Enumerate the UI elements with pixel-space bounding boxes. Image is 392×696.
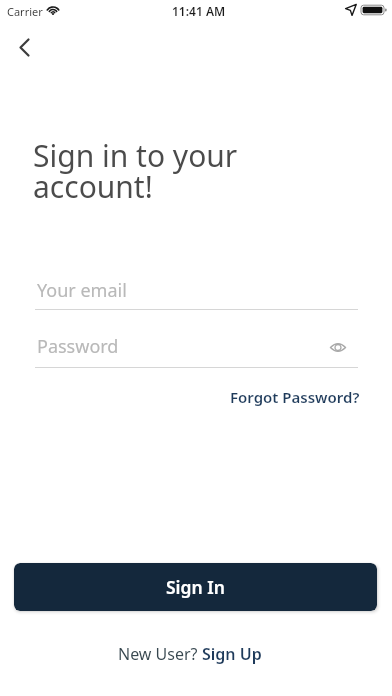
staticText: Sign in to your account!: [33, 135, 238, 207]
staticText: Sign Up: [202, 643, 262, 665]
button[interactable]: Forgot Password?: [150, 385, 360, 408]
button[interactable]: Sign In: [14, 563, 377, 611]
staticText: Password: [37, 334, 119, 359]
staticText: New User?: [118, 643, 202, 665]
button[interactable]: Password: [35, 329, 358, 367]
button[interactable]: Sign Up: [202, 643, 262, 665]
button[interactable]: Your email: [35, 273, 358, 309]
staticText: 11:41 AM: [172, 3, 226, 19]
button[interactable]: [8, 28, 44, 64]
staticText: Forgot Password?: [230, 387, 360, 407]
staticText: Carrier: [7, 4, 43, 19]
button[interactable]: [326, 335, 350, 359]
staticText: Your email: [37, 278, 127, 303]
staticText: Sign In: [166, 575, 225, 599]
